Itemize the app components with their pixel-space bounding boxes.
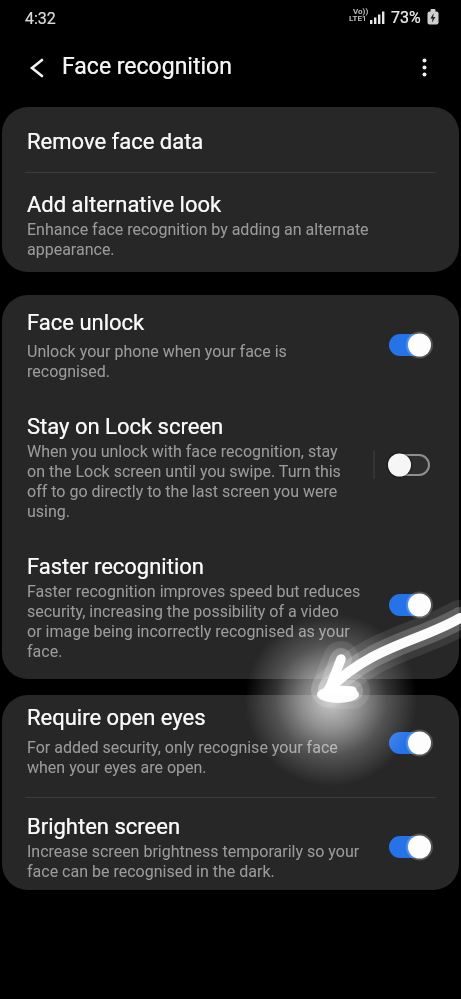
button[interactable] (2, 797, 459, 890)
button[interactable] (403, 46, 447, 90)
staticText: Increase screen brightness temporarily s… (27, 842, 360, 881)
staticText: Faster recognition (27, 554, 204, 580)
button[interactable] (2, 107, 459, 172)
staticText: Enhance face recognition by adding an al… (27, 220, 369, 259)
button[interactable] (14, 46, 58, 90)
button[interactable] (2, 695, 459, 797)
staticText: 4:32 (25, 9, 56, 28)
staticText: Unlock your phone when your face is reco… (27, 342, 287, 381)
staticText: Faster recognition improves speed but re… (27, 582, 361, 661)
staticText: Add alternative look (27, 192, 222, 218)
staticText: Vo)) (353, 7, 369, 16)
staticText: When you unlock with face recognition, s… (27, 442, 341, 521)
button[interactable] (2, 295, 459, 400)
staticText: For added security, only recognise your … (27, 738, 338, 777)
staticText: Face recognition (62, 53, 232, 80)
staticText: 73% (391, 8, 421, 27)
button[interactable] (2, 400, 459, 540)
staticText: Face unlock (27, 310, 145, 336)
staticText: Require open eyes (27, 705, 206, 731)
staticText: Brighten screen (27, 814, 181, 840)
staticText: Remove face data (27, 129, 204, 155)
staticText: LTE1 (349, 14, 367, 23)
button[interactable] (2, 172, 459, 272)
button[interactable] (2, 540, 459, 679)
staticText: Stay on Lock screen (27, 414, 224, 440)
